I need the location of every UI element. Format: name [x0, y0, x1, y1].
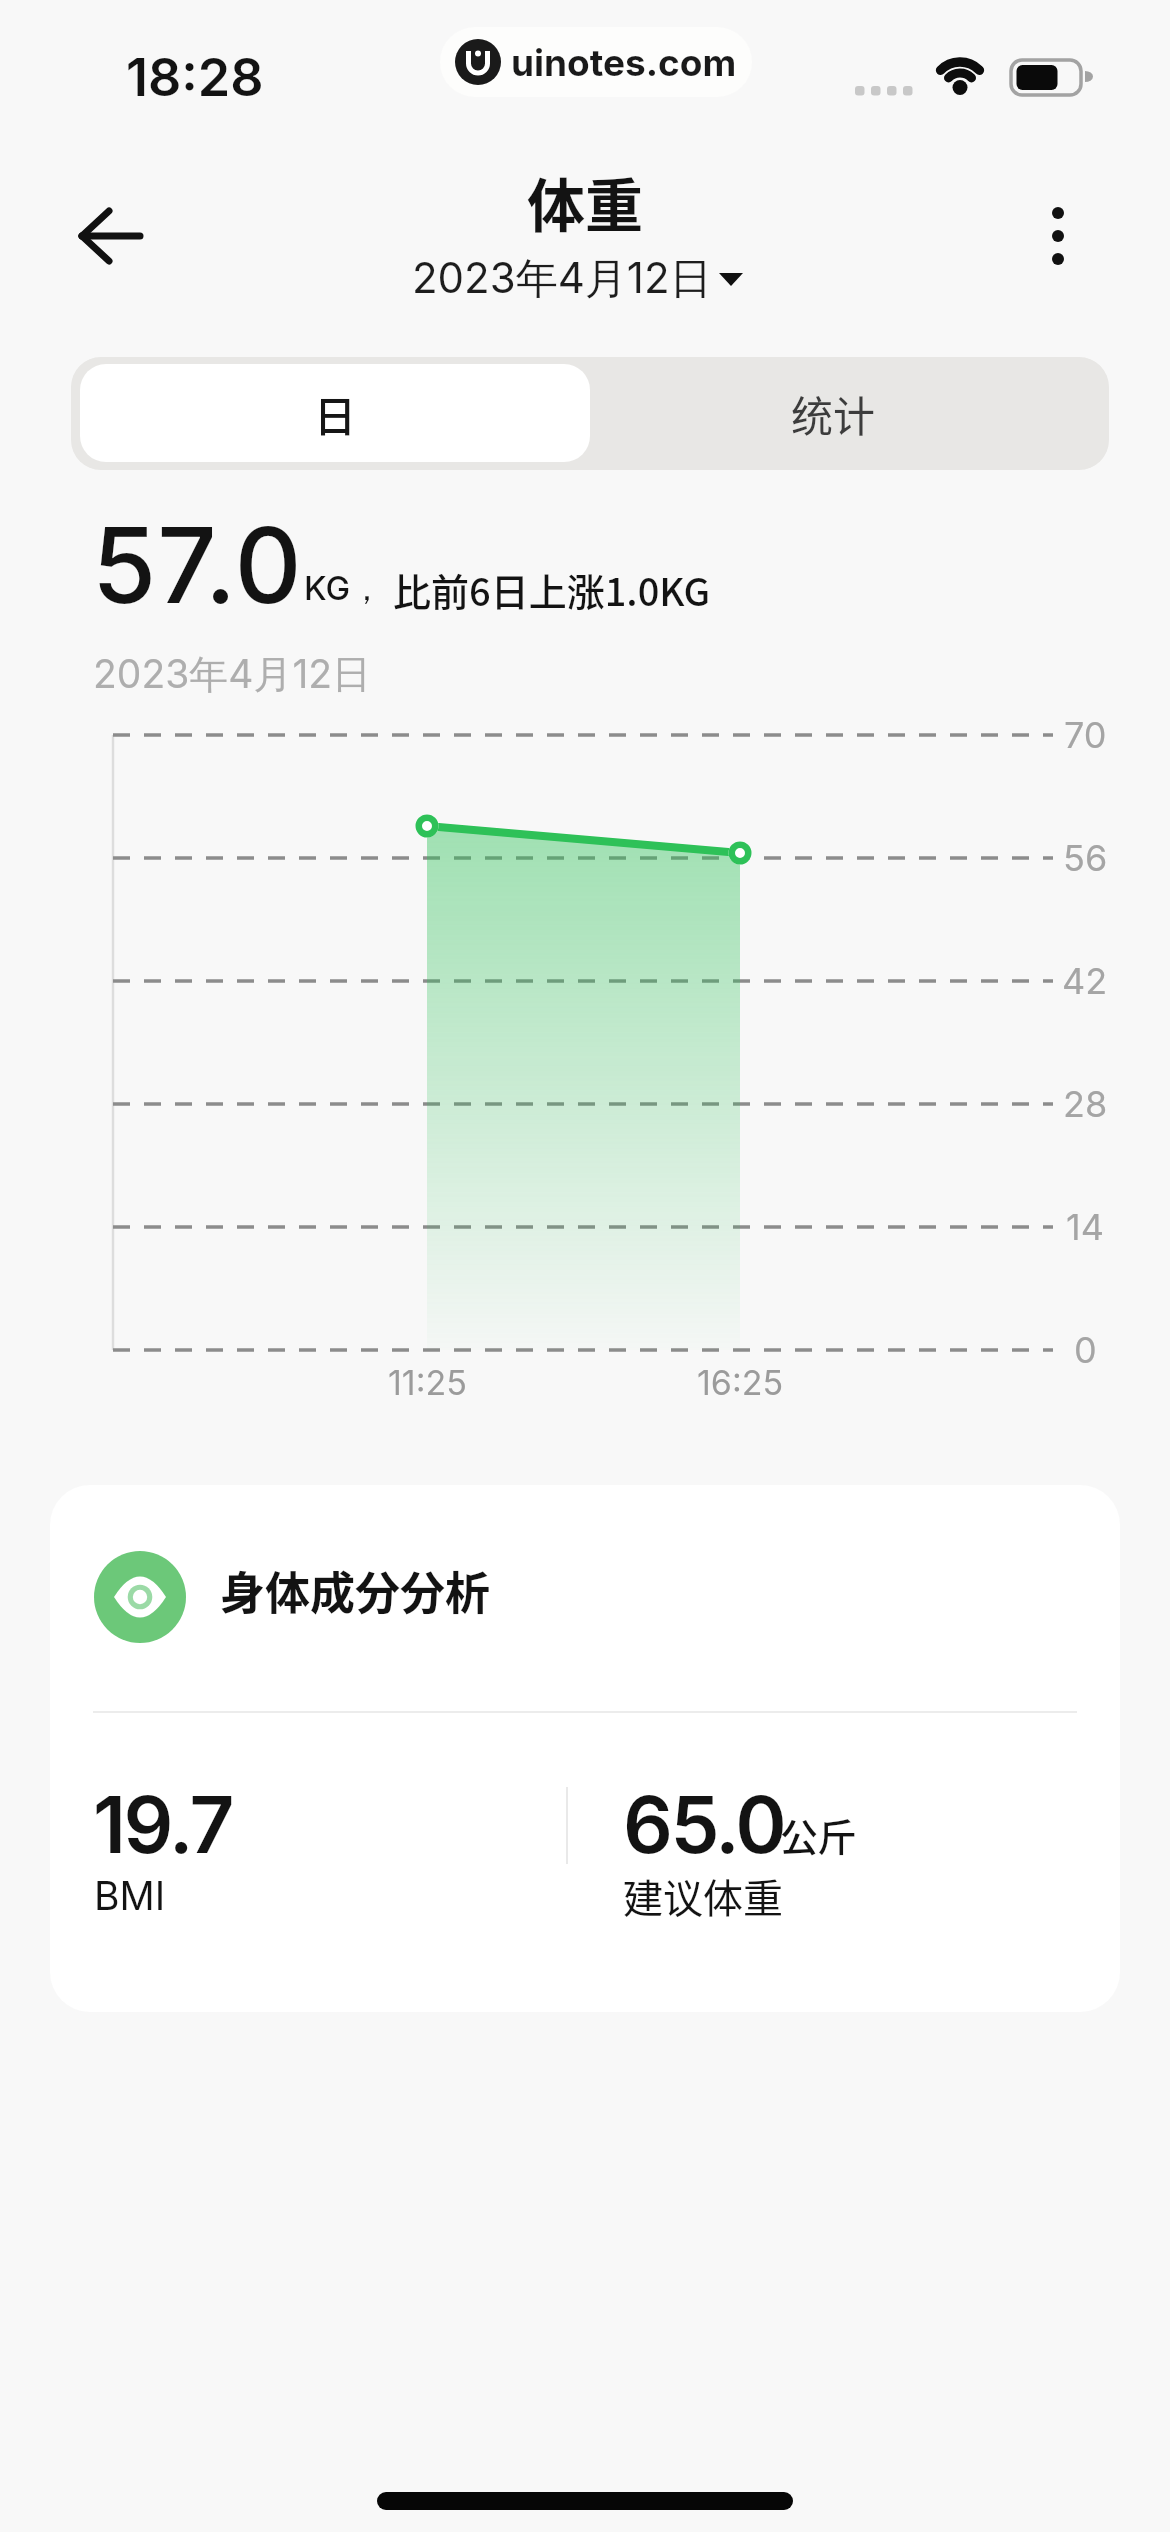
staticText: 2023年4月12日	[412, 252, 712, 305]
staticText: 0	[1074, 1328, 1097, 1372]
staticText: 2023年4月12日	[93, 650, 372, 699]
staticText: 42	[1062, 959, 1108, 1003]
staticText: 65.0	[623, 1777, 785, 1871]
staticText: uinotes.com	[511, 40, 737, 85]
staticText: 身体成分分析	[220, 1558, 491, 1623]
staticText: BMI	[94, 1872, 166, 1919]
staticText: 70	[1064, 713, 1107, 757]
staticText: 公斤	[780, 1807, 857, 1862]
button[interactable]: 身体成分分析	[50, 1485, 1120, 2012]
staticText: 57.0	[92, 502, 303, 628]
staticText: 19.7	[93, 1777, 232, 1871]
staticText: 体重	[527, 160, 644, 244]
button[interactable]	[1010, 190, 1106, 280]
button[interactable]: 统计	[590, 357, 1109, 470]
staticText: 18:28	[126, 46, 264, 109]
staticText: 11:25	[388, 1362, 467, 1403]
button[interactable]: 2023年4月12日	[412, 252, 744, 305]
staticText: 14	[1066, 1205, 1104, 1249]
button[interactable]: 日	[80, 364, 590, 462]
staticText: 56	[1063, 836, 1108, 880]
staticText: 日	[314, 383, 357, 444]
staticText: 建议体重	[623, 1867, 783, 1925]
staticText: 16:25	[697, 1362, 784, 1403]
staticText: 比前6日上涨1.0KG	[393, 562, 711, 617]
staticText: KG，	[304, 568, 384, 610]
staticText: 28	[1063, 1082, 1108, 1126]
button[interactable]	[60, 190, 160, 280]
staticText: 统计	[791, 383, 876, 444]
